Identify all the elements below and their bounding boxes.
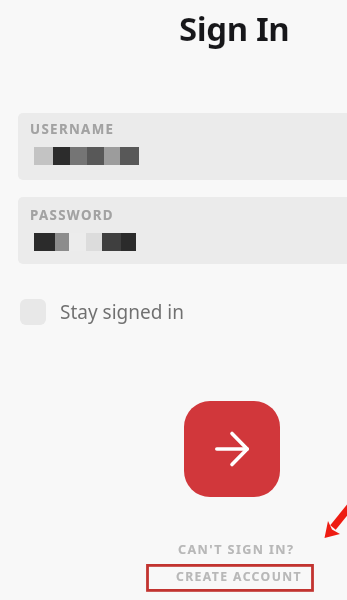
- staticText: CREATE ACCOUNT: [176, 568, 302, 585]
- staticText: PASSWORD: [30, 206, 114, 224]
- button[interactable]: CREATE ACCOUNT: [147, 565, 313, 591]
- button[interactable]: PASSWORD: [18, 197, 347, 264]
- button[interactable]: USERNAME: [18, 113, 347, 180]
- staticText: Sign In: [179, 6, 290, 51]
- button[interactable]: Sign in: [184, 401, 280, 497]
- staticText: Stay signed in: [60, 299, 184, 325]
- button[interactable]: Stay signed in: [0, 294, 200, 330]
- button[interactable]: CAN'T SIGN IN?: [178, 537, 295, 561]
- staticText: USERNAME: [30, 120, 115, 138]
- staticText: CAN'T SIGN IN?: [178, 541, 295, 558]
